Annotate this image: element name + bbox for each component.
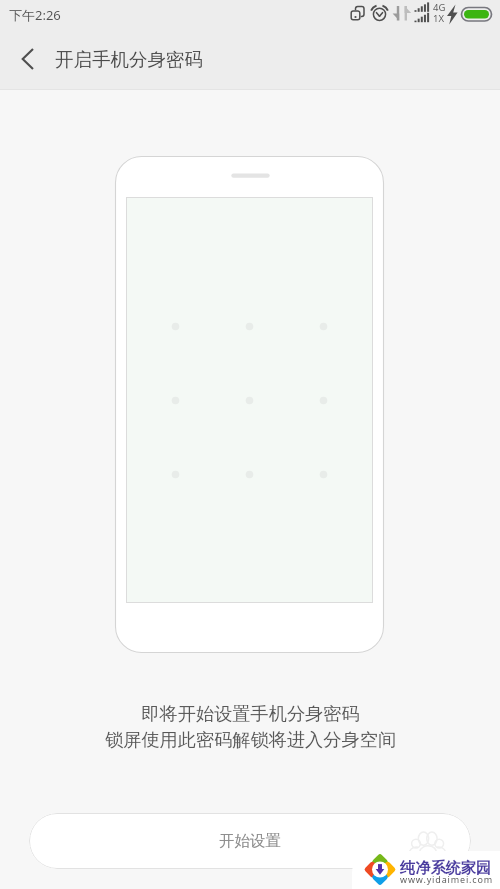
staticText: 1X: [433, 12, 445, 25]
staticText: 纯净系统家园: [400, 858, 492, 877]
staticText: 开启手机分身密码: [55, 48, 203, 71]
staticText: 开始设置: [219, 831, 281, 851]
staticText: 下午2:26: [9, 6, 61, 24]
staticText: www.yidaimei.com: [400, 873, 494, 885]
staticText: 4G: [433, 1, 446, 14]
button[interactable]: Back: [2, 38, 46, 82]
staticText: 即将开始设置手机分身密码: [141, 702, 360, 725]
staticText: 锁屏使用此密码解锁将进入分身空间: [105, 728, 396, 751]
button[interactable]: 开始设置: [29, 813, 471, 869]
